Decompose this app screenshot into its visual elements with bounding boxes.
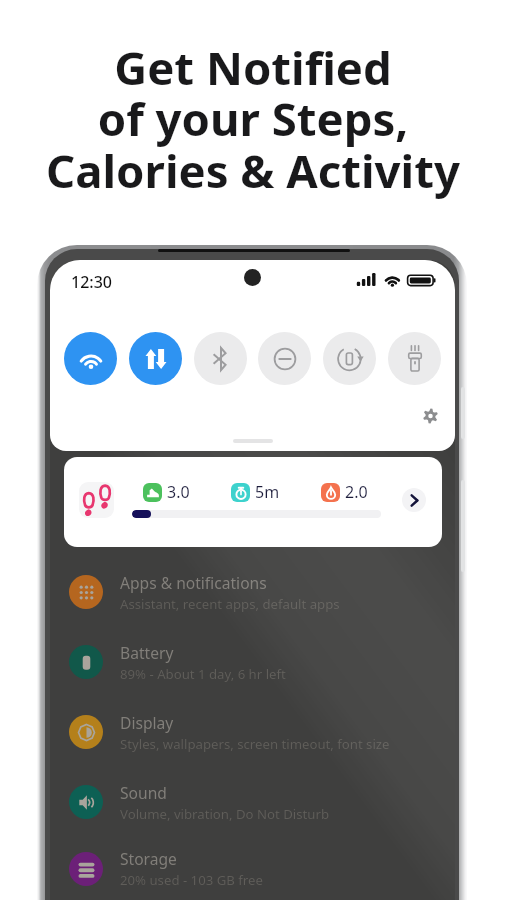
staticText: Get Notified of your Steps, Calories & A…: [46, 36, 460, 202]
staticText: Assistant, recent apps, default apps: [120, 595, 340, 613]
staticText: Battery: [120, 642, 174, 663]
button[interactable]: Battery: [50, 627, 455, 697]
button[interactable]: Mobile data: [129, 332, 182, 385]
button[interactable]: Wi-Fi: [64, 332, 117, 385]
staticText: Volume, vibration, Do Not Disturb: [120, 805, 329, 823]
staticText: Storage: [120, 848, 177, 869]
staticText: 2.0: [345, 481, 368, 503]
staticText: Sound: [120, 782, 167, 803]
staticText: 5m: [255, 481, 280, 503]
button[interactable]: Flashlight: [388, 332, 441, 385]
staticText: Display: [120, 712, 174, 733]
button[interactable]: Apps & notifications: [50, 557, 455, 627]
button[interactable]: Open activity details: [402, 488, 426, 512]
staticText: 3.0: [167, 481, 190, 503]
staticText: 12:30: [71, 271, 112, 293]
staticText: Styles, wallpapers, screen timeout, font…: [120, 735, 390, 753]
button[interactable]: Do not disturb: [258, 332, 311, 385]
button[interactable]: Sound: [50, 767, 455, 837]
staticText: 20% used - 103 GB free: [120, 871, 263, 889]
button[interactable]: Storage: [50, 837, 455, 900]
button[interactable]: 3.0: [64, 457, 442, 547]
staticText: Apps & notifications: [120, 572, 267, 593]
button[interactable]: Display: [50, 697, 455, 767]
button[interactable]: Auto rotate: [323, 332, 376, 385]
button[interactable]: Settings: [416, 402, 444, 430]
button[interactable]: Bluetooth: [194, 332, 247, 385]
staticText: 89% - About 1 day, 6 hr left: [120, 665, 286, 683]
